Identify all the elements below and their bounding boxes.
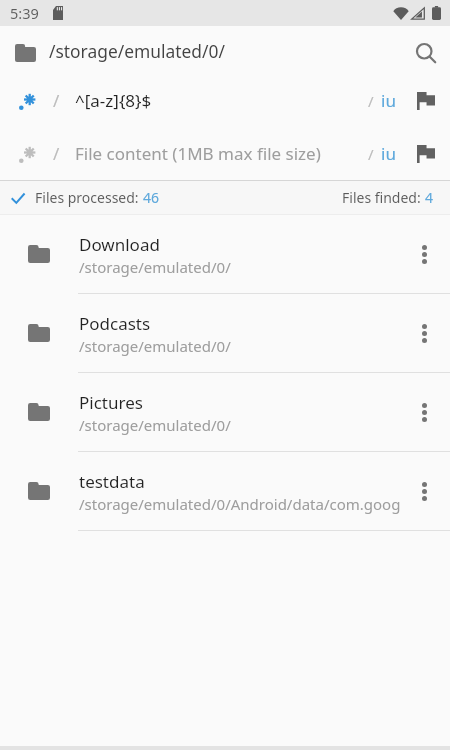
staticText: 4: [425, 188, 434, 207]
button[interactable]: More options: [401, 384, 447, 440]
button[interactable]: testdata: [0, 452, 450, 531]
staticText: /: [368, 144, 374, 164]
button[interactable]: Regex: [0, 74, 450, 127]
button[interactable]: Download: [0, 215, 450, 294]
staticText: /storage/emulated/0/: [79, 336, 231, 356]
staticText: Files finded:: [342, 188, 425, 207]
staticText: Download: [79, 233, 160, 256]
button[interactable]: More options: [401, 226, 447, 282]
staticText: Pictures: [79, 391, 143, 414]
staticText: /storage/emulated/0/: [79, 257, 231, 277]
button[interactable]: More options: [401, 305, 447, 361]
staticText: /: [368, 91, 374, 111]
staticText: File content (1MB max file size): [75, 142, 368, 165]
staticText: /storage/emulated/0/: [79, 415, 231, 435]
button[interactable]: Flag: [408, 136, 444, 172]
staticText: Files processed:: [35, 188, 143, 207]
staticText: /: [53, 89, 60, 112]
staticText: 5:39: [10, 3, 39, 23]
staticText: /: [53, 142, 60, 165]
button[interactable]: /storage/emulated/0/: [0, 26, 450, 74]
button[interactable]: Flag: [408, 83, 444, 119]
staticText: /storage/emulated/0/: [49, 39, 225, 63]
staticText: iu: [381, 142, 396, 165]
staticText: /storage/emulated/0/Android/data/com.goo…: [79, 494, 401, 514]
staticText: iu: [381, 89, 396, 112]
button[interactable]: Podcasts: [0, 294, 450, 373]
other: Regex: [16, 91, 36, 111]
staticText: 46: [143, 188, 160, 207]
other: Regex: [16, 144, 36, 164]
button[interactable]: More options: [401, 463, 447, 519]
button[interactable]: Regex: [0, 127, 450, 180]
staticText: Podcasts: [79, 312, 151, 335]
staticText: testdata: [79, 470, 145, 493]
button[interactable]: Search: [402, 29, 450, 77]
button[interactable]: Pictures: [0, 373, 450, 452]
staticText: ^[a-z]{8}$: [75, 89, 368, 112]
